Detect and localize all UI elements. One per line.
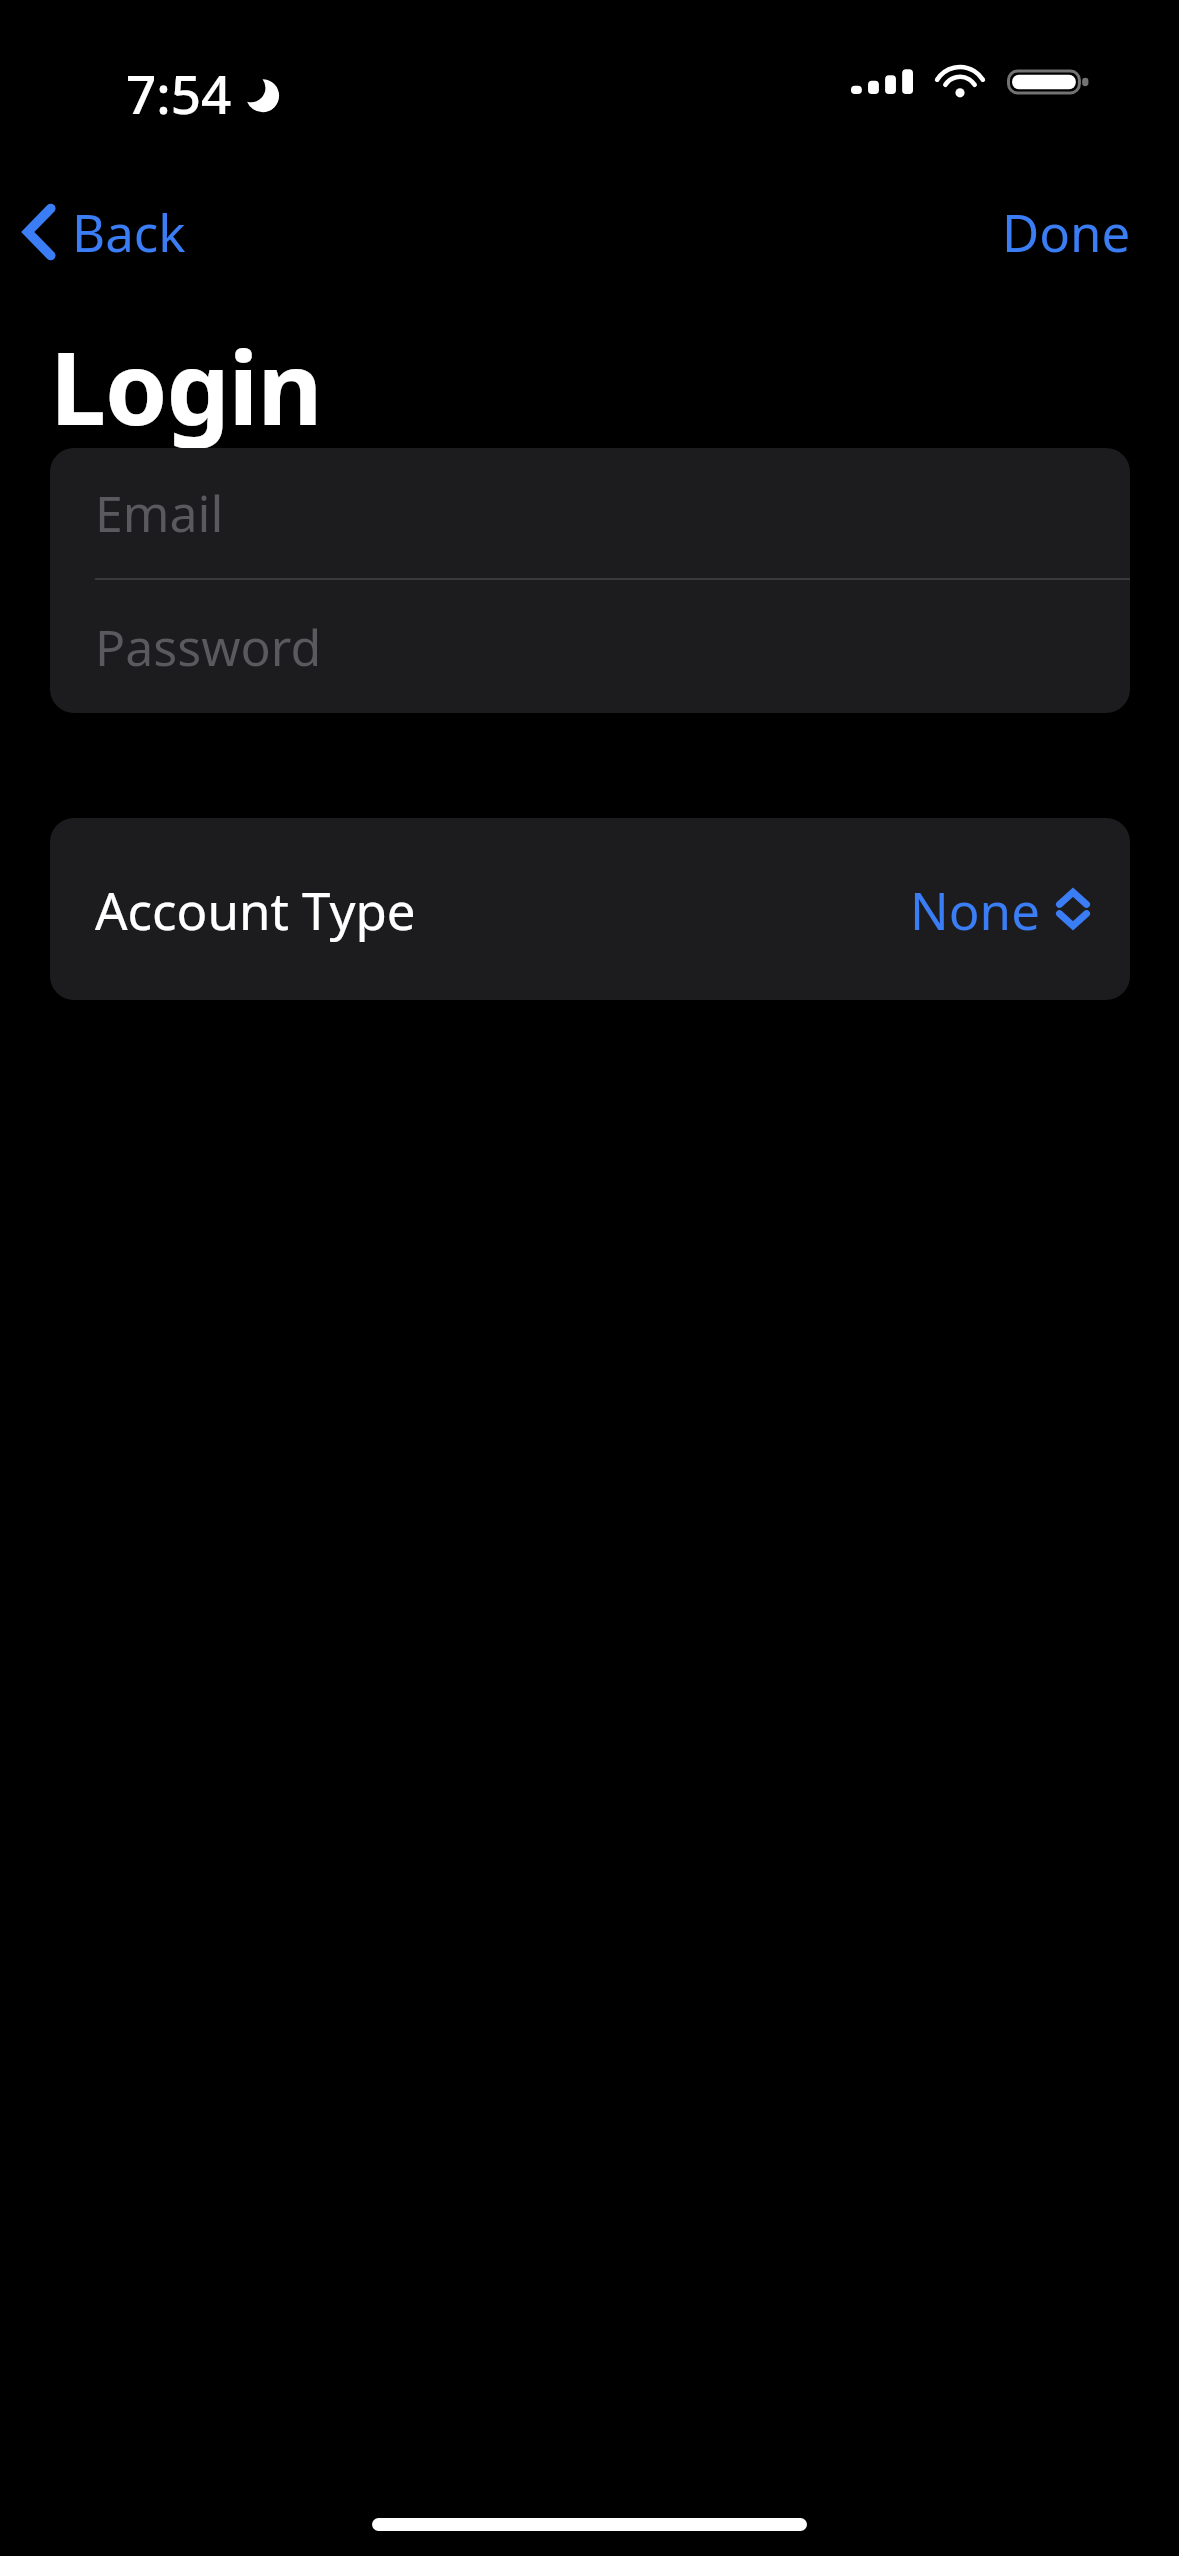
- button[interactable]: Back: [14, 187, 194, 276]
- staticText: Password: [95, 613, 322, 681]
- staticText: Account Type: [95, 875, 416, 944]
- staticText: Back: [72, 197, 186, 266]
- staticText: Login: [50, 318, 322, 454]
- staticText: Email: [95, 479, 224, 547]
- staticText: Done: [1002, 197, 1131, 266]
- other: Change account type: [1056, 886, 1090, 932]
- button[interactable]: Done: [990, 187, 1143, 276]
- staticText: 7:54: [126, 57, 232, 129]
- button[interactable]: Password: [50, 580, 1130, 713]
- button[interactable]: Email: [50, 448, 1130, 578]
- staticText: None: [910, 875, 1040, 944]
- button[interactable]: Account Type: [50, 818, 1130, 1000]
